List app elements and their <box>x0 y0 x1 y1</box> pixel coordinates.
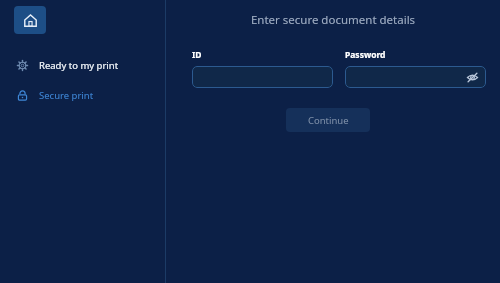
staticText: Enter secure document details <box>166 12 500 28</box>
staticText: Secure print <box>39 89 94 102</box>
button[interactable]: Continue <box>286 108 370 132</box>
staticText: Continue <box>308 114 349 127</box>
button[interactable]: Show password <box>465 70 479 84</box>
button[interactable]: Secure print <box>0 85 165 105</box>
staticText: Password <box>345 49 386 61</box>
button[interactable]: Password input <box>345 66 486 88</box>
staticText: Ready to my print <box>39 59 119 72</box>
staticText: ID <box>192 49 202 61</box>
button[interactable]: Home <box>14 6 46 34</box>
button[interactable]: ID input <box>192 66 333 88</box>
button[interactable]: Ready to my print <box>0 55 165 75</box>
